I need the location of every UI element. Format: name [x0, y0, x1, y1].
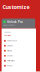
staticText: Appearance — [7, 40, 17, 42]
staticText: Settings — [4, 35, 11, 36]
staticText: App Icon — [7, 45, 13, 47]
staticText: Privacy — [7, 65, 13, 67]
staticText: Sounds — [7, 55, 13, 57]
staticText: Widgets — [7, 50, 12, 52]
staticText: Customize — [3, 3, 30, 11]
staticText: Notifications — [7, 60, 15, 62]
staticText: GENERAL — [4, 31, 11, 33]
staticText: Unlock Pro — [7, 20, 23, 24]
staticText: Get every feature — [3, 24, 15, 26]
